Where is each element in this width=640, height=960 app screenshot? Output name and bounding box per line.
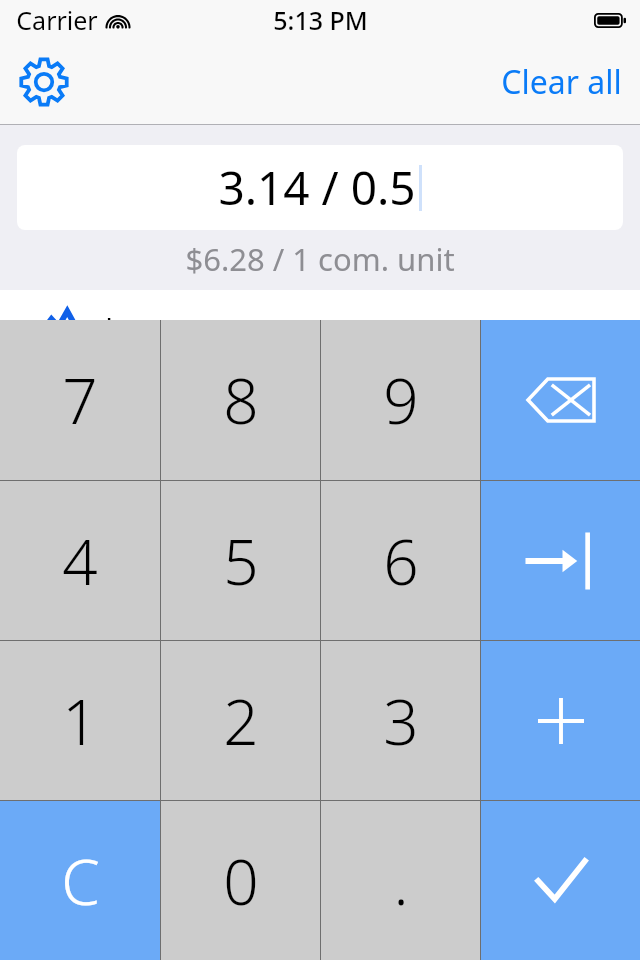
button[interactable]: Done: [481, 801, 640, 960]
button[interactable]: .: [321, 801, 480, 960]
button[interactable]: $6.58: [0, 290, 640, 320]
staticText: 5: [223, 519, 259, 603]
staticText: .: [393, 839, 409, 923]
button[interactable]: C: [0, 801, 160, 960]
button[interactable]: Clear all: [483, 50, 640, 114]
button[interactable]: 8: [161, 320, 320, 480]
button[interactable]: 9: [321, 320, 480, 480]
staticText: Clear all: [501, 60, 622, 104]
button[interactable]: 6: [321, 481, 480, 640]
staticText: 1: [62, 679, 98, 763]
button[interactable]: 4: [0, 481, 160, 640]
staticText: 4: [62, 519, 98, 603]
staticText: 8: [223, 358, 259, 442]
button[interactable]: Next field: [481, 481, 640, 640]
staticText: $6.28 / 1 com. unit: [185, 238, 455, 280]
button[interactable]: Backspace: [481, 320, 640, 480]
staticText: C: [61, 839, 100, 923]
staticText: Carrier: [16, 3, 98, 37]
button[interactable]: 3: [321, 641, 480, 800]
staticText: 3.14 / 0.5: [218, 156, 416, 219]
staticText: 9: [383, 358, 419, 442]
button[interactable]: 1: [0, 641, 160, 800]
button[interactable]: 7: [0, 320, 160, 480]
staticText: 3: [383, 679, 419, 763]
button[interactable]: 0: [161, 801, 320, 960]
button[interactable]: 2: [161, 641, 320, 800]
button[interactable]: 3.14 / 0.5: [17, 145, 623, 230]
staticText: $6.58: [98, 306, 196, 336]
staticText: 0: [223, 839, 259, 923]
staticText: 6: [383, 519, 419, 603]
button[interactable]: Settings: [16, 54, 72, 110]
button[interactable]: Add: [481, 641, 640, 800]
staticText: 7: [62, 358, 98, 442]
staticText: 2: [223, 679, 259, 763]
staticText: 5:13 PM: [273, 3, 368, 37]
button[interactable]: 5: [161, 481, 320, 640]
